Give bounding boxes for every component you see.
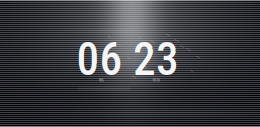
staticText: 23: [133, 33, 179, 86]
staticText: min: [152, 77, 159, 83]
staticText: 06: [76, 33, 122, 86]
button[interactable]: 06: [0, 0, 260, 127]
button[interactable]: 23: [0, 0, 260, 127]
staticText: hrs: [98, 77, 103, 83]
